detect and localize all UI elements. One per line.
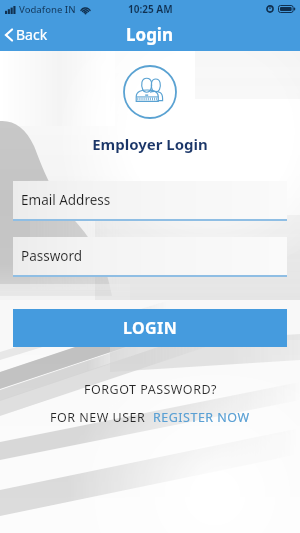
staticText: FORGOT PASSWORD? [84, 381, 217, 398]
staticText: Password [21, 247, 83, 265]
staticText: REGISTER NOW [153, 409, 250, 426]
button[interactable]: Back [0, 20, 56, 49]
staticText: Vodafone IN [19, 3, 76, 16]
button[interactable]: Email Address [13, 181, 287, 221]
staticText: Email Address [21, 191, 111, 209]
staticText: LOGIN [123, 317, 178, 339]
button[interactable]: REGISTER NOW [153, 409, 250, 426]
button[interactable]: FORGOT PASSWORD? [78, 379, 223, 400]
staticText: Back [16, 25, 48, 44]
staticText: 10:25 AM [128, 2, 173, 16]
button[interactable]: Password [13, 237, 287, 277]
staticText: FOR NEW USER [50, 409, 146, 426]
button[interactable]: LOGIN [13, 309, 287, 347]
staticText: Employer Login [0, 134, 300, 154]
staticText: Login [126, 23, 174, 46]
